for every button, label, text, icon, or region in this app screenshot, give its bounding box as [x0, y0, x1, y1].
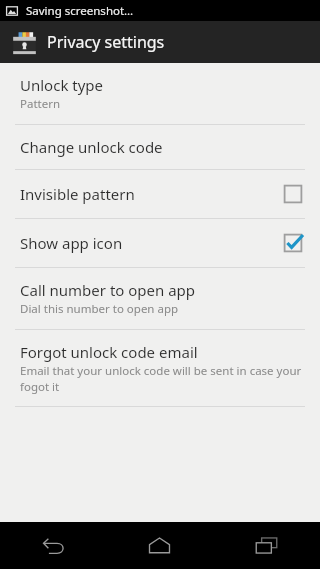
staticText: Dial this number to open app — [20, 301, 179, 317]
button[interactable]: Invisible pattern — [0, 170, 320, 218]
staticText: Privacy settings — [47, 31, 165, 53]
button[interactable]: Checked — [281, 231, 305, 255]
staticText: Forgot unlock code email — [20, 342, 198, 362]
button[interactable]: Unchecked — [281, 182, 305, 206]
button[interactable]: Back — [0, 522, 106, 569]
button[interactable]: Home — [106, 522, 213, 569]
staticText: Show app icon — [20, 233, 123, 253]
staticText: Email that your unlock code will be sent… — [20, 363, 305, 394]
button[interactable]: Forgot unlock code email — [0, 330, 320, 406]
button[interactable]: Recent apps — [213, 522, 320, 569]
staticText: Invisible pattern — [20, 184, 135, 204]
staticText: Call number to open app — [20, 280, 196, 300]
button[interactable]: Call number to open app — [0, 268, 320, 329]
button[interactable]: Privacy settings — [0, 21, 320, 63]
button[interactable]: Change unlock code — [0, 125, 320, 169]
staticText: Change unlock code — [20, 137, 163, 157]
button[interactable]: Show app icon — [0, 219, 320, 267]
staticText: Saving screenshot… — [26, 3, 134, 19]
button[interactable]: Unlock type — [0, 63, 320, 124]
staticText: Pattern — [20, 96, 61, 112]
staticText: Unlock type — [20, 75, 104, 95]
